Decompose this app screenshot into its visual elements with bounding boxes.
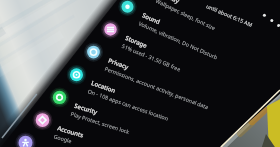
button[interactable]: Phone showing the Android Settings list — [0, 0, 280, 147]
